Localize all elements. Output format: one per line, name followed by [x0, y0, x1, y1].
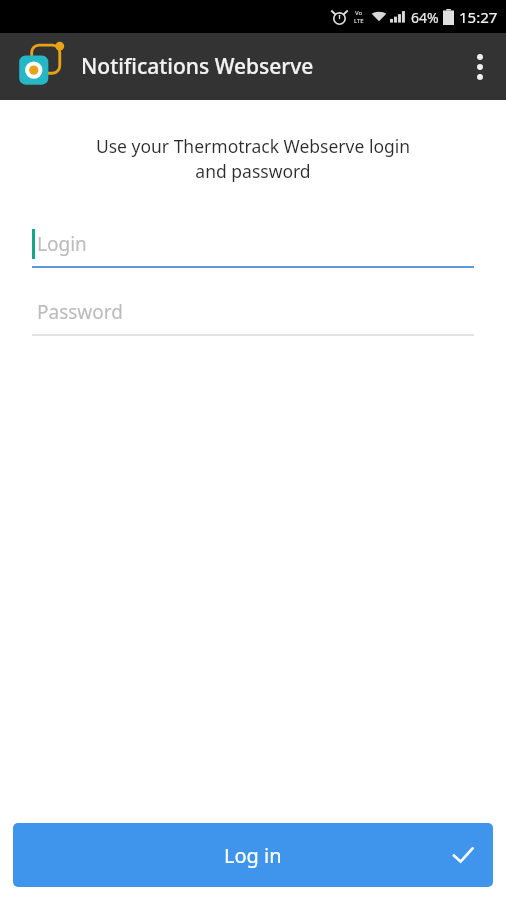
staticText: Vo [355, 9, 363, 17]
staticText: Login [37, 231, 87, 257]
staticText: Log in [224, 842, 282, 869]
button[interactable]: Password [32, 290, 474, 336]
staticText: LTE [354, 17, 364, 25]
staticText: Password [37, 299, 123, 325]
staticText: Use your Thermotrack Webserve login and … [20, 134, 486, 184]
button[interactable]: Log in [13, 823, 493, 887]
button[interactable]: More options [454, 33, 506, 100]
staticText: 64% [411, 8, 439, 27]
staticText: Notifications Webserve [81, 52, 314, 81]
staticText: 15:27 [459, 7, 498, 27]
button[interactable]: Login [32, 222, 474, 268]
